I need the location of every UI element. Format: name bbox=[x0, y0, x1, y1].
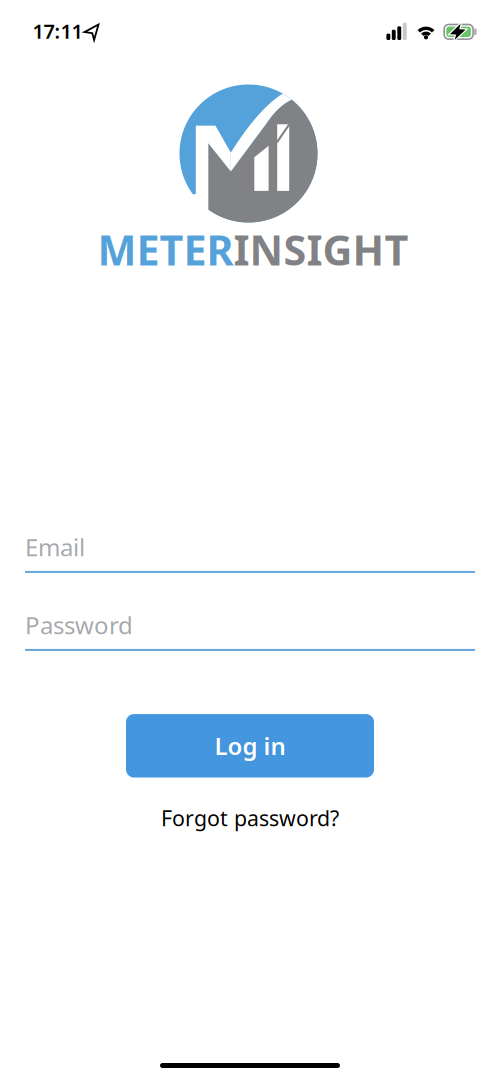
button[interactable]: Email bbox=[25, 532, 475, 572]
button[interactable]: Log in bbox=[126, 714, 374, 777]
button[interactable]: Password bbox=[25, 610, 475, 650]
staticText: Log in bbox=[214, 730, 285, 762]
staticText: 17:11 bbox=[32, 18, 82, 44]
button[interactable]: Forgot password? bbox=[161, 804, 339, 832]
staticText: Password bbox=[25, 609, 133, 641]
staticText: Forgot password? bbox=[161, 804, 339, 832]
staticText: METER bbox=[97, 222, 233, 277]
staticText: INSIGHT bbox=[233, 222, 408, 277]
staticText: Email bbox=[25, 531, 85, 563]
